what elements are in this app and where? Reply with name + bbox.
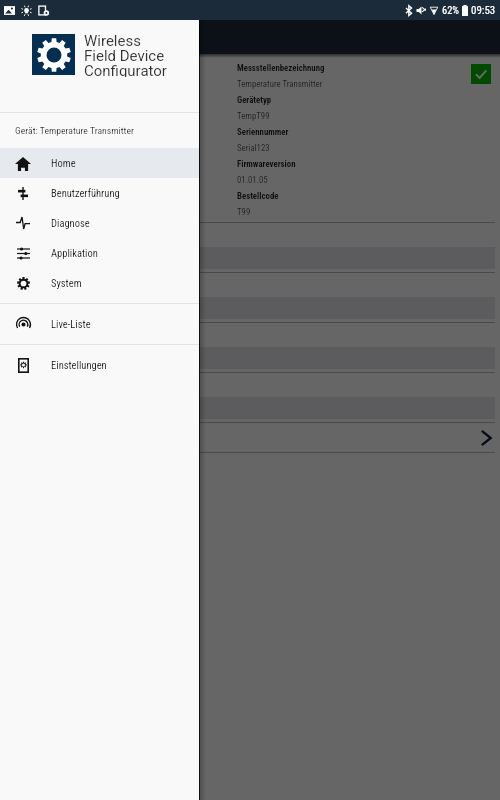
staticText: 62% bbox=[442, 4, 460, 16]
button[interactable]: Benutzerführung bbox=[0, 178, 199, 208]
button[interactable]: Status OK bbox=[471, 64, 491, 84]
button[interactable] bbox=[0, 297, 495, 319]
staticText: Einstellungen bbox=[51, 359, 107, 371]
button[interactable]: System bbox=[0, 268, 199, 298]
staticText: Home bbox=[51, 157, 76, 169]
button[interactable]: Live-Liste bbox=[0, 304, 199, 344]
staticText: Messstellenbezeichnung bbox=[237, 63, 325, 73]
staticText: System bbox=[51, 277, 82, 289]
staticText: Bestellcode bbox=[237, 191, 279, 201]
staticText: Configurator bbox=[84, 62, 167, 77]
button[interactable] bbox=[0, 347, 495, 369]
staticText: Seriennummer bbox=[237, 127, 289, 137]
staticText: Wireless bbox=[84, 32, 141, 47]
staticText: 01.01.05 bbox=[237, 175, 268, 185]
staticText: T99 bbox=[237, 207, 251, 217]
button[interactable]: Applikation bbox=[0, 238, 199, 268]
staticText: Temperature Transmitter bbox=[237, 79, 323, 89]
staticText: TempT99 bbox=[237, 111, 270, 121]
button[interactable] bbox=[0, 397, 495, 419]
staticText: Diagnose bbox=[51, 217, 90, 229]
button[interactable]: Weiter bbox=[0, 423, 500, 452]
staticText: 09:53 bbox=[471, 4, 496, 17]
staticText: Gerät: Temperature Transmitter bbox=[15, 125, 134, 136]
button[interactable]: Diagnose bbox=[0, 208, 199, 238]
staticText: Field Device bbox=[84, 47, 165, 62]
button[interactable]: Home bbox=[0, 148, 199, 178]
staticText: Live-Liste bbox=[51, 318, 91, 330]
staticText: Firmwareversion bbox=[237, 159, 296, 169]
button[interactable] bbox=[0, 247, 495, 269]
button[interactable]: Navigationsmenü schließen bbox=[0, 20, 500, 800]
staticText: Applikation bbox=[51, 247, 98, 259]
staticText: Gerätetyp bbox=[237, 95, 272, 105]
staticText: Serial123 bbox=[237, 143, 270, 153]
staticText: Benutzerführung bbox=[51, 187, 120, 199]
button[interactable]: Einstellungen bbox=[0, 345, 199, 385]
